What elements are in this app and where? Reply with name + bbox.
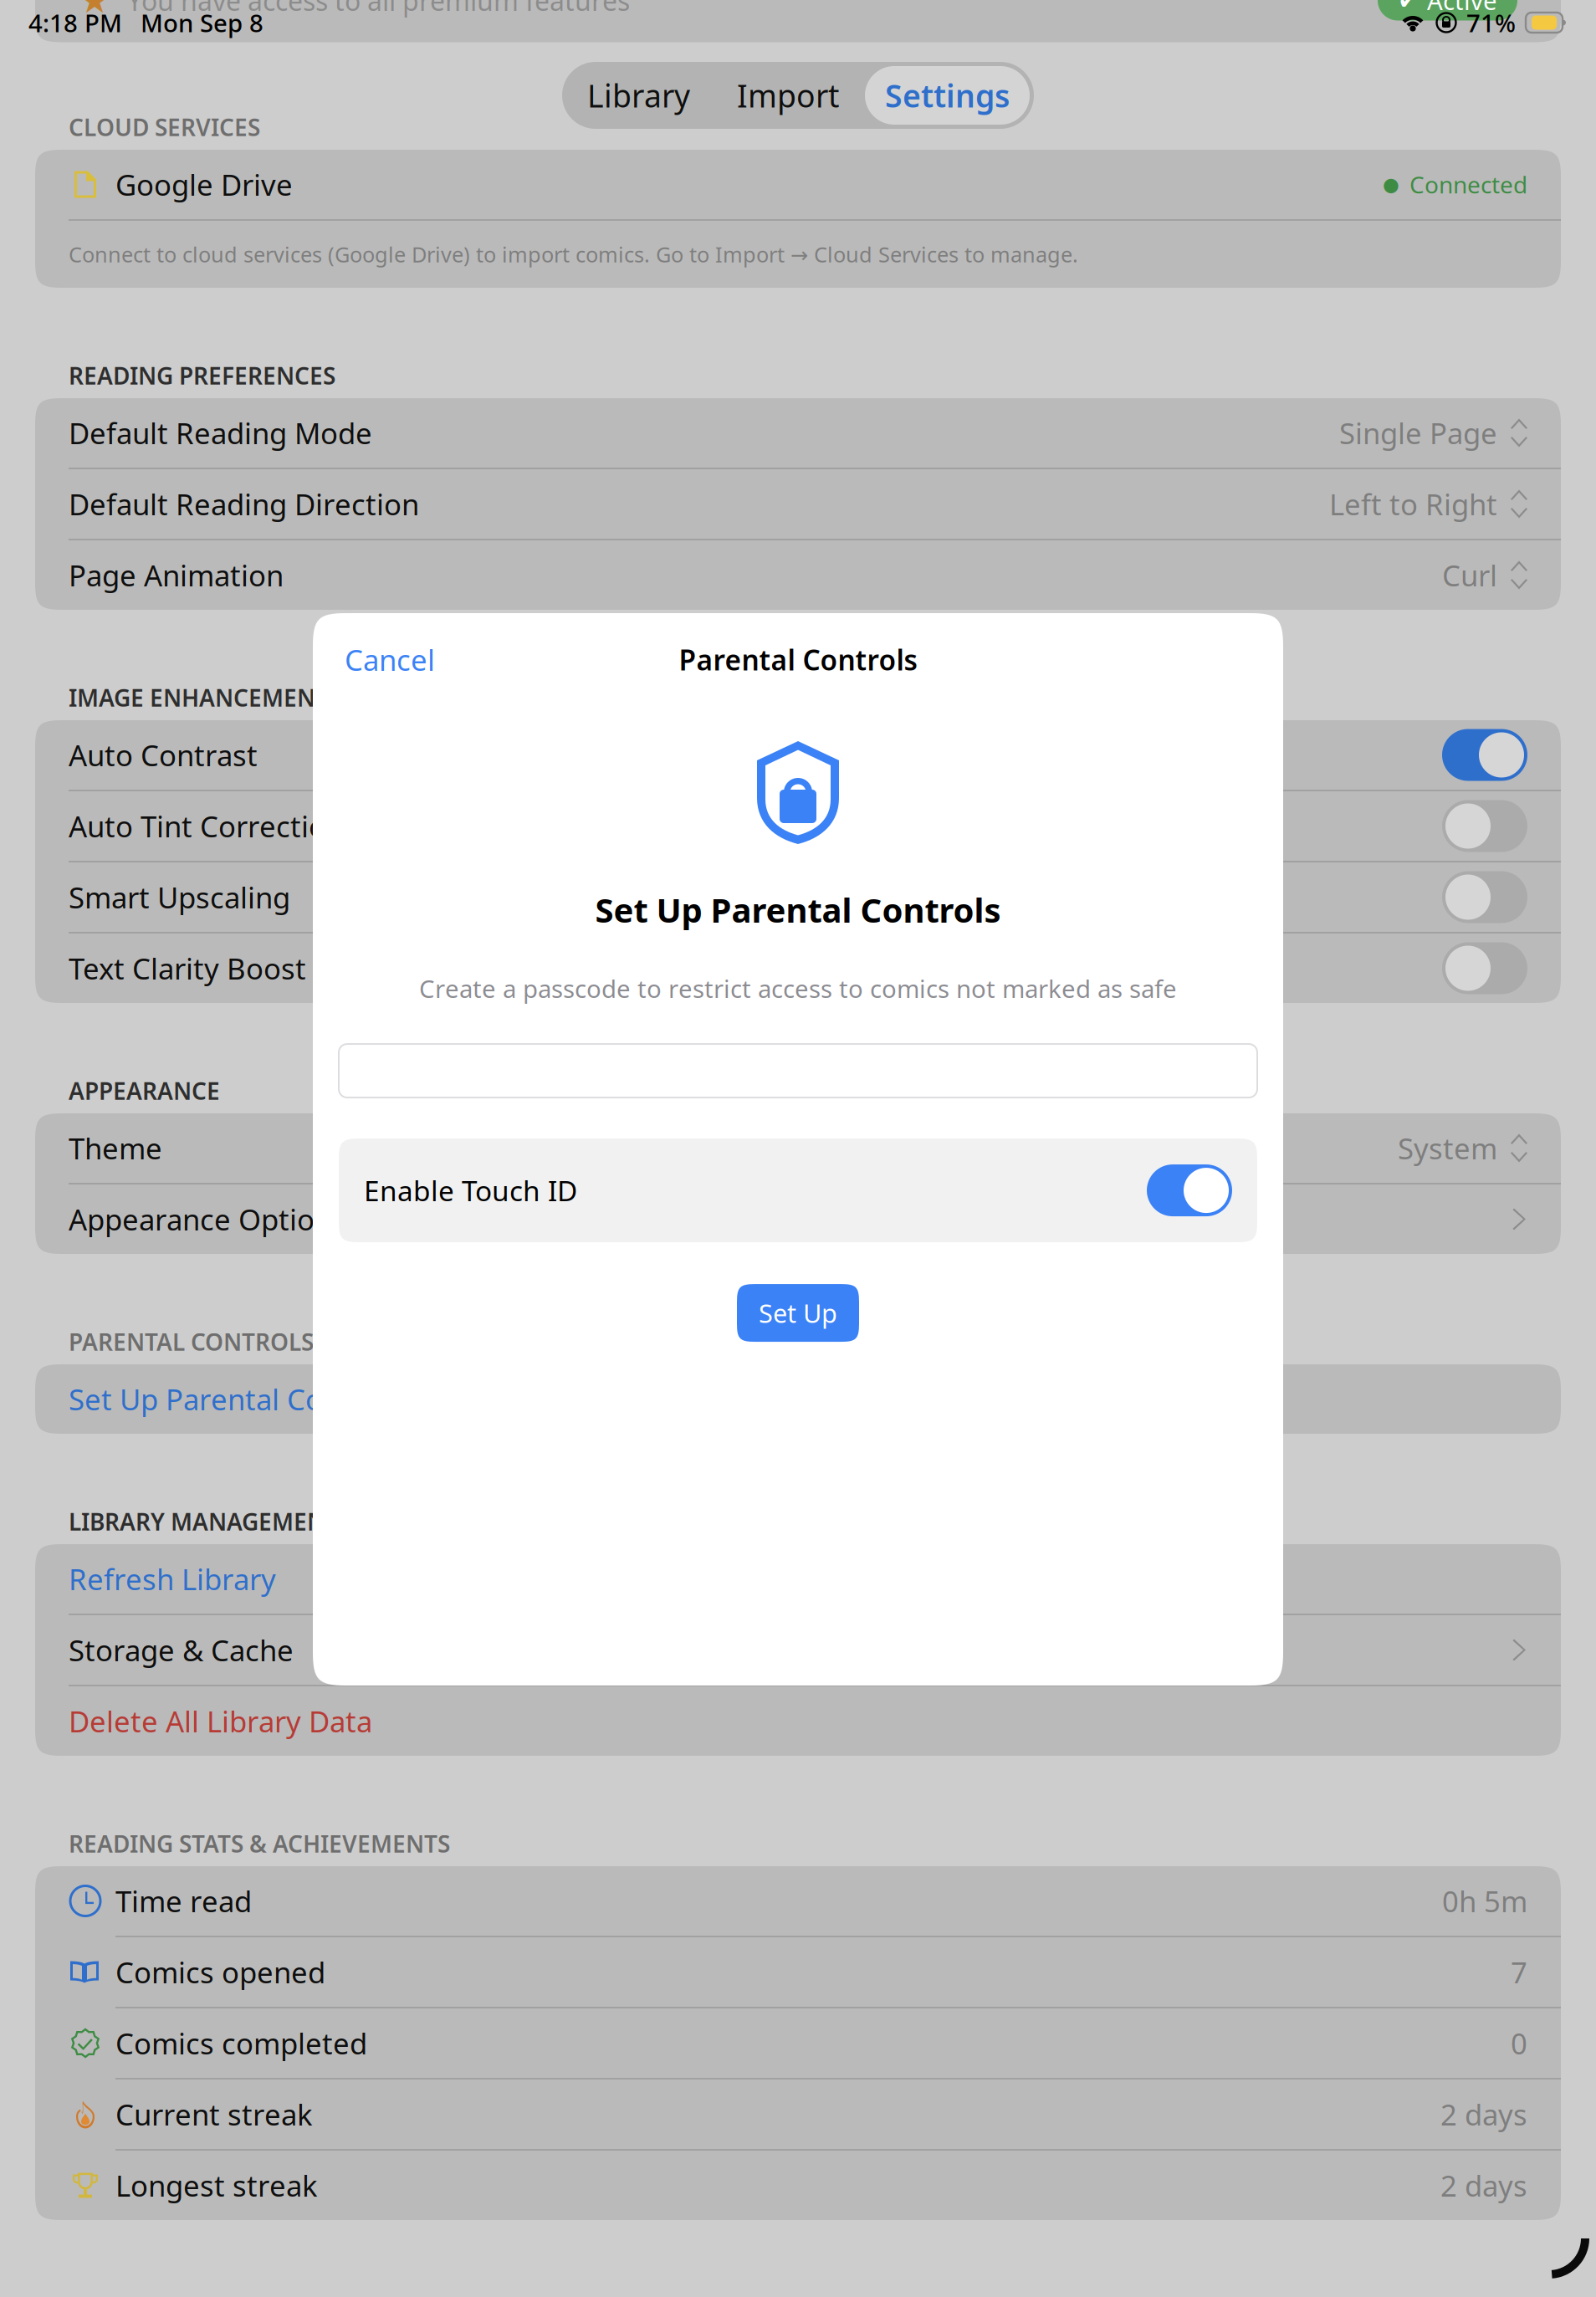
button[interactable]: Cancel	[345, 640, 435, 679]
staticText: Set Up Parental Controls	[595, 888, 1001, 932]
staticText: Import	[737, 75, 839, 116]
staticText: Refresh Library	[69, 1560, 276, 1598]
staticText: READING PREFERENCES	[69, 360, 335, 391]
staticText: Settings	[885, 75, 1010, 116]
button[interactable]: Default Reading Direction	[35, 469, 1561, 539]
button[interactable]: Refresh Library	[35, 1544, 1561, 1614]
staticText: Library	[587, 75, 690, 116]
staticText: Single Page	[1339, 414, 1497, 452]
staticText: Time read	[115, 1882, 252, 1920]
button[interactable]: Delete All Library Data	[35, 1686, 1561, 1756]
staticText: Default Reading Mode	[69, 414, 372, 452]
staticText: Page Animation	[69, 556, 284, 594]
staticText: PARENTAL CONTROLS	[69, 1326, 314, 1357]
button[interactable]: Page Animation	[35, 540, 1561, 610]
staticText: APPEARANCE	[69, 1075, 220, 1106]
staticText: Default Reading Direction	[69, 485, 419, 523]
staticText: Delete All Library Data	[69, 1702, 372, 1740]
button[interactable]: Auto Contrast	[35, 720, 1561, 790]
staticText: Active	[1427, 0, 1497, 17]
staticText: Connected	[1409, 169, 1527, 200]
staticText: Parental Controls	[679, 641, 917, 678]
staticText: ●	[1383, 174, 1399, 195]
staticText: Comics opened	[115, 1953, 325, 1991]
staticText: Mon Sep 8	[141, 6, 263, 39]
staticText: 7	[1511, 1953, 1527, 1991]
staticText: ★	[79, 0, 110, 21]
staticText: You have access to all premium features	[127, 0, 630, 18]
staticText: 0	[1511, 2024, 1527, 2062]
staticText: Storage & Cache	[69, 1631, 294, 1669]
staticText: Set Up	[759, 1296, 837, 1330]
staticText: READING STATS & ACHIEVEMENTS	[69, 1828, 450, 1859]
staticText: Auto Tint Correction	[69, 807, 344, 845]
staticText: 71%	[1466, 6, 1516, 39]
staticText: LIBRARY MANAGEMENT	[69, 1506, 339, 1537]
staticText: Current streak	[115, 2095, 313, 2133]
button[interactable]: Enable Touch ID	[313, 1139, 1283, 1242]
staticText: Cancel	[345, 640, 435, 679]
staticText: CLOUD SERVICES	[69, 112, 260, 143]
button[interactable]: Theme	[35, 1113, 1561, 1183]
staticText: Connect to cloud services (Google Drive)…	[69, 240, 1078, 268]
button[interactable]: Appearance Options	[35, 1184, 1561, 1254]
staticText: 2 days	[1440, 2095, 1527, 2133]
staticText: Google Drive	[115, 165, 293, 204]
staticText: Theme	[69, 1129, 162, 1167]
staticText: Auto Contrast	[69, 736, 258, 774]
staticText: Create a passcode to restrict access to …	[419, 972, 1177, 1005]
staticText: Curl	[1442, 556, 1497, 594]
staticText: Left to Right	[1329, 485, 1497, 523]
button[interactable]: Storage & Cache	[35, 1615, 1561, 1685]
button[interactable]: Set Up Parental Controls	[35, 1364, 1561, 1434]
button[interactable]: Auto Tint Correction	[35, 791, 1561, 861]
staticText: 4:18 PM	[28, 6, 122, 39]
button[interactable]: Default Reading Mode	[35, 398, 1561, 468]
staticText: 0h 5m	[1442, 1882, 1527, 1920]
staticText: Comics completed	[115, 2024, 367, 2062]
button[interactable]: Set Up	[737, 1284, 859, 1342]
staticText: IMAGE ENHANCEMENT	[69, 682, 329, 713]
staticText: Smart Upscaling	[69, 878, 290, 916]
staticText: System	[1398, 1129, 1497, 1167]
button[interactable]: Library	[562, 62, 715, 129]
staticText: Appearance Options	[69, 1200, 346, 1238]
staticText: ✔	[1398, 0, 1419, 14]
button[interactable]: Smart Upscaling	[35, 862, 1561, 932]
staticText: 2 days	[1440, 2166, 1527, 2205]
staticText: Text Clarity Boost	[69, 949, 306, 987]
staticText: Longest streak	[115, 2166, 318, 2205]
staticText: Set Up Parental Controls	[69, 1380, 402, 1418]
button[interactable]: Import	[715, 62, 861, 129]
button[interactable]: Text Clarity Boost	[35, 934, 1561, 1003]
button[interactable]: Google Drive	[35, 150, 1561, 219]
button[interactable]: Settings	[861, 66, 1034, 125]
staticText: Enable Touch ID	[364, 1172, 577, 1209]
